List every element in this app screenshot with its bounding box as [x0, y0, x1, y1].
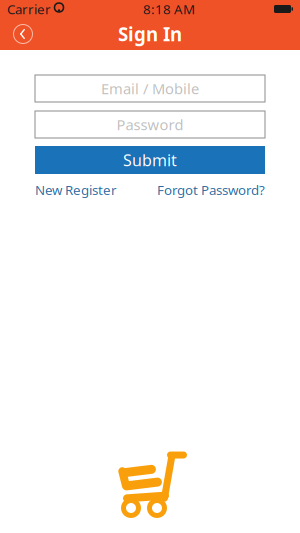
staticText: 8:18 AM: [143, 0, 195, 18]
button[interactable]: Email / Mobile: [35, 75, 265, 102]
button[interactable]: New Register: [35, 181, 117, 199]
staticText: Submit: [123, 149, 177, 171]
staticText: Email / Mobile: [101, 79, 199, 98]
button[interactable]: Forgot Password?: [157, 181, 265, 199]
staticText: Forgot Password?: [157, 181, 265, 199]
staticText: Password: [116, 115, 183, 134]
staticText: New Register: [35, 181, 117, 199]
staticText: Carrier: [7, 0, 51, 18]
staticText: Sign In: [118, 22, 182, 46]
button[interactable]: Back: [7, 18, 39, 50]
button[interactable]: Submit: [35, 146, 265, 174]
button[interactable]: Password: [35, 111, 265, 138]
